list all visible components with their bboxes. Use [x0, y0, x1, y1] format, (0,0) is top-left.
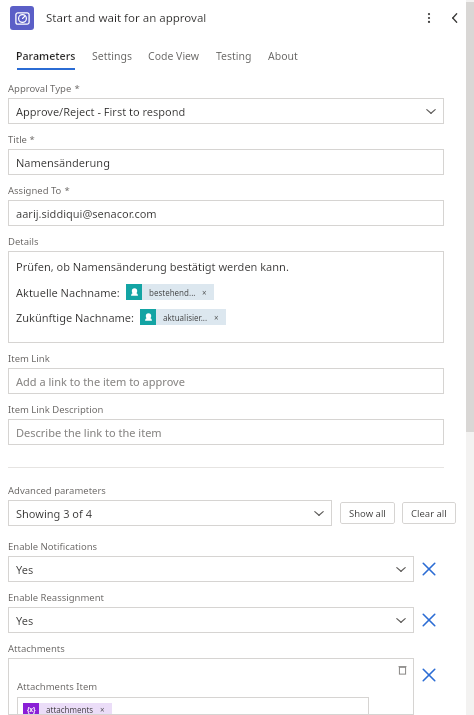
staticText: Enable Reassignment	[8, 591, 105, 604]
staticText: *	[72, 82, 80, 95]
button[interactable]: Testing	[208, 49, 260, 70]
staticText: Add a link to the item to approve	[16, 374, 185, 389]
button[interactable]: Namensänderung	[8, 149, 444, 175]
button[interactable]: Add a link to the item to approve	[8, 368, 444, 394]
staticText: Start and wait for an approval	[46, 10, 207, 26]
button[interactable]: Code View	[140, 49, 208, 70]
button[interactable]: {x}	[17, 697, 369, 715]
staticText: Aktuelle Nachname:	[16, 285, 120, 300]
staticText: Describe the link to the item	[16, 425, 162, 440]
button[interactable]: Back	[442, 5, 468, 31]
button[interactable]: aarij.siddiqui@senacor.com	[8, 200, 444, 226]
button[interactable]: Remove Enable Reassignment	[416, 607, 442, 633]
staticText: Clear all	[411, 507, 447, 520]
staticText: Yes	[16, 562, 34, 577]
staticText: Details	[8, 235, 39, 248]
staticText: ×	[100, 704, 105, 715]
button[interactable]: {x}	[23, 703, 112, 715]
staticText: Item Link	[8, 352, 50, 365]
button[interactable]: Approve/Reject - First to respond	[8, 98, 444, 124]
button[interactable]: More options	[416, 5, 442, 31]
button[interactable]: Showing 3 of 4	[8, 500, 332, 526]
staticText: attachments	[46, 704, 94, 715]
button[interactable]: Show all	[340, 502, 395, 524]
button[interactable]: aktualisier...	[140, 309, 226, 325]
staticText: bestehend...	[149, 287, 196, 298]
staticText: Code View	[148, 49, 200, 63]
staticText: Yes	[16, 613, 34, 628]
button[interactable]: Remove Attachments	[416, 662, 442, 688]
staticText: Testing	[216, 49, 252, 63]
button[interactable]: bestehend...	[126, 284, 214, 300]
staticText: {x}	[27, 705, 36, 714]
button[interactable]: Yes	[8, 607, 414, 633]
button[interactable]: Describe the link to the item	[8, 419, 444, 445]
button[interactable]: Approval action icon	[10, 6, 34, 30]
staticText: Settings	[92, 49, 132, 63]
staticText: Item Link Description	[8, 403, 104, 416]
button[interactable]: Clear all	[402, 502, 456, 524]
staticText: Zukünftige Nachname:	[16, 310, 134, 325]
staticText: Approve/Reject - First to respond	[16, 104, 186, 119]
staticText: aktualisier...	[163, 312, 208, 323]
button[interactable]: Delete attachments item	[8, 658, 414, 715]
button[interactable]: Yes	[8, 556, 414, 582]
button[interactable]: Parameters	[8, 49, 84, 70]
staticText: Enable Notifications	[8, 540, 98, 553]
staticText: Attachments Item	[17, 680, 98, 693]
staticText: Prüfen, ob Namensänderung bestätigt werd…	[16, 259, 289, 274]
button[interactable]: Remove Enable Notifications	[416, 556, 442, 582]
button[interactable]: Settings	[84, 49, 140, 70]
button[interactable]: Delete attachments item	[394, 659, 410, 679]
staticText: ×	[214, 312, 219, 323]
staticText: Showing 3 of 4	[16, 506, 92, 521]
button[interactable]: About	[260, 49, 306, 70]
staticText: ×	[202, 287, 207, 298]
staticText: Namensänderung	[16, 155, 110, 170]
staticText: About	[268, 49, 298, 63]
staticText: Attachments	[8, 642, 65, 655]
staticText: Title	[8, 133, 27, 146]
button[interactable]: Prüfen, ob Namensänderung bestätigt werd…	[8, 251, 444, 343]
staticText: *	[27, 133, 35, 146]
staticText: Advanced parameters	[8, 484, 106, 497]
staticText: Show all	[349, 507, 386, 520]
staticText: Parameters	[16, 49, 76, 63]
staticText: *	[62, 184, 70, 197]
staticText: Assigned To	[8, 184, 62, 197]
staticText: Approval Type	[8, 82, 72, 95]
staticText: aarij.siddiqui@senacor.com	[16, 206, 157, 221]
